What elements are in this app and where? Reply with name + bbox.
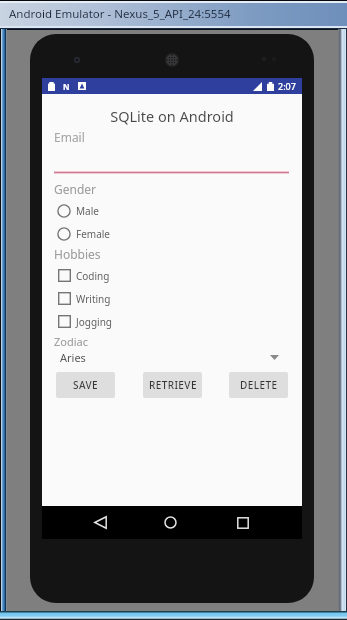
- button[interactable]: Jogging: [54, 310, 302, 333]
- staticText: Jogging: [76, 315, 112, 329]
- staticText: DELETE: [240, 378, 278, 392]
- staticText: Male: [76, 204, 99, 218]
- button[interactable]: RETRIEVE: [143, 372, 202, 398]
- staticText: N: [63, 81, 70, 92]
- button[interactable]: SAVE: [56, 372, 115, 398]
- button[interactable]: Recents: [221, 506, 265, 539]
- button[interactable]: Back: [78, 506, 122, 539]
- button[interactable]: Coding: [54, 264, 302, 287]
- staticText: Zodiac: [54, 334, 89, 349]
- staticText: Coding: [76, 269, 110, 283]
- button[interactable]: Female: [54, 222, 302, 245]
- staticText: Writing: [76, 292, 111, 306]
- button[interactable]: Home: [148, 506, 192, 539]
- staticText: SAVE: [73, 378, 98, 392]
- button[interactable]: Male: [54, 199, 302, 222]
- staticText: Email: [54, 129, 85, 145]
- staticText: Gender: [54, 181, 97, 197]
- staticText: Aries: [60, 350, 86, 365]
- staticText: Hobbies: [54, 246, 101, 262]
- staticText: SQLite on Android: [42, 106, 302, 126]
- button[interactable]: Aries: [54, 350, 289, 365]
- staticText: Android Emulator - Nexus_5_API_24:5554: [9, 6, 231, 22]
- staticText: Female: [76, 227, 111, 241]
- button[interactable]: DELETE: [229, 372, 288, 398]
- staticText: 2:07: [278, 80, 296, 92]
- staticText: RETRIEVE: [149, 378, 197, 392]
- button[interactable]: Writing: [54, 287, 302, 310]
